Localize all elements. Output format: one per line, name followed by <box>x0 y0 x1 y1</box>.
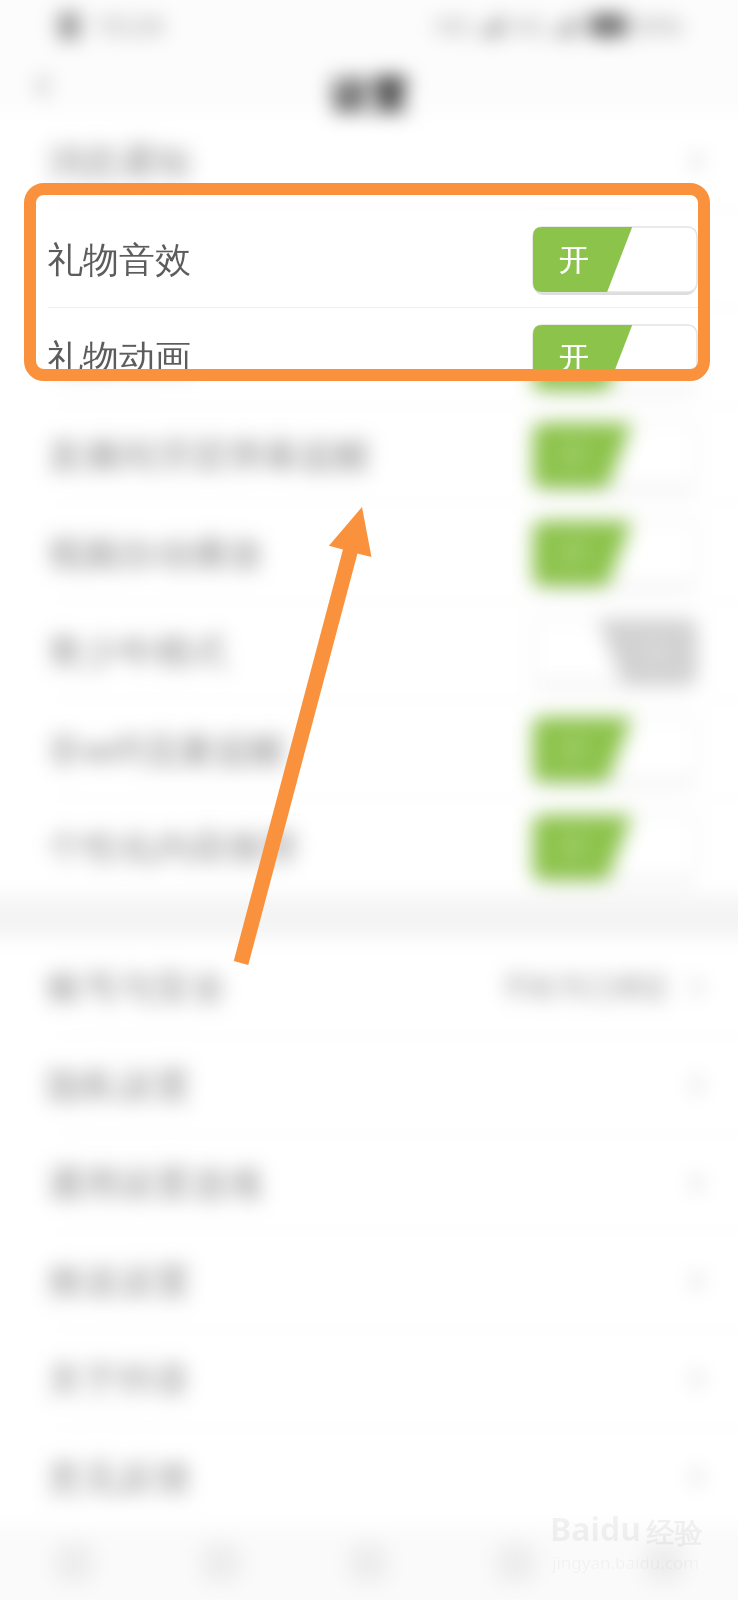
staticText: 视频自动播放 <box>47 531 263 576</box>
button[interactable]: 关于抖音 <box>0 1330 738 1428</box>
staticText: 4G <box>513 9 545 42</box>
staticText: 开 <box>559 339 589 377</box>
staticText: 非wifi流量提醒 <box>47 725 287 774</box>
staticText: 手机号已绑定 <box>502 970 670 1005</box>
staticText: 隐私设置 <box>47 1063 191 1108</box>
button[interactable]: 礼物动画 <box>0 308 738 406</box>
staticText: 通用设置选项 <box>47 1161 263 1206</box>
staticText: 开 <box>559 339 589 377</box>
button[interactable]: 个性化内容推荐 <box>0 798 738 896</box>
staticText: 消息通知 <box>47 139 191 184</box>
button[interactable]: On <box>533 227 697 292</box>
button[interactable]: On <box>533 325 697 390</box>
button[interactable]: On <box>533 423 697 488</box>
button[interactable]: Tab 4 <box>590 1526 738 1600</box>
staticText: 直播间浮层弹幕提醒 <box>47 433 371 478</box>
staticText: 青少年模式 <box>47 629 227 674</box>
button[interactable]: On <box>533 521 697 586</box>
staticText: 礼物动画 <box>47 335 191 380</box>
button[interactable]: 账号与安全 <box>0 938 738 1036</box>
staticText: 10:24 <box>94 7 164 44</box>
button[interactable]: Off <box>533 619 697 684</box>
staticText: 礼物音效 <box>47 237 191 282</box>
button[interactable]: On <box>533 325 697 390</box>
button[interactable]: Back <box>28 69 62 103</box>
button[interactable]: Tab 2 <box>294 1526 442 1600</box>
button[interactable]: 礼物音效 <box>0 210 738 308</box>
staticText: 意见反馈 <box>47 1455 191 1500</box>
staticText: jingyan.baidu.com <box>552 1551 700 1574</box>
staticText: 账号与安全 <box>47 965 227 1010</box>
staticText: 个性化内容推荐 <box>47 825 299 870</box>
button[interactable]: 视频自动播放 <box>0 504 738 602</box>
staticText: 开 <box>559 241 589 279</box>
staticText: 礼物动画 <box>47 335 191 380</box>
staticText: 推送设置 <box>47 1259 191 1304</box>
button[interactable]: On <box>533 815 697 880</box>
staticText: 经验 <box>646 1516 702 1551</box>
button[interactable]: 隐私设置 <box>0 1036 738 1134</box>
button[interactable]: 青少年模式 <box>0 602 738 700</box>
button[interactable]: 礼物音效 <box>0 210 738 308</box>
staticText: 开 <box>559 241 589 279</box>
button[interactable]: On <box>533 717 697 782</box>
button[interactable]: Tab 3 <box>442 1526 590 1600</box>
staticText: 礼物音效 <box>47 237 191 282</box>
button[interactable]: On <box>533 227 697 292</box>
staticText: 关于抖音 <box>47 1357 191 1402</box>
button[interactable]: 非wifi流量提醒 <box>0 700 738 798</box>
button[interactable]: 意见反馈 <box>0 1428 738 1526</box>
button[interactable]: 推送设置 <box>0 1232 738 1330</box>
button[interactable]: 直播间浮层弹幕提醒 <box>0 406 738 504</box>
button[interactable]: Tab 1 <box>147 1526 294 1600</box>
staticText: 89% <box>635 9 683 42</box>
button[interactable]: 消息通知 <box>0 112 738 210</box>
staticText: Baidu <box>550 1507 642 1551</box>
staticText: HD <box>435 9 471 42</box>
button[interactable]: 通用设置选项 <box>0 1134 738 1232</box>
staticText: 设置 <box>329 71 409 121</box>
button[interactable]: 礼物动画 <box>0 308 738 406</box>
button[interactable]: Tab 0 <box>0 1526 147 1600</box>
